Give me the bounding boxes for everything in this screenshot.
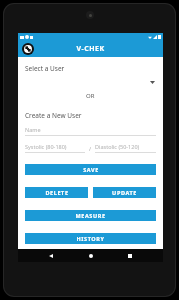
staticText: Diastolic (50-120): [95, 143, 140, 150]
button[interactable]: DELETE: [25, 187, 88, 198]
staticText: HISTORY: [76, 235, 105, 242]
staticText: Create a New User: [25, 111, 82, 120]
staticText: Systolic (80-180): [25, 143, 67, 150]
button[interactable]: Recent apps: [123, 249, 137, 262]
staticText: DELETE: [45, 189, 69, 196]
staticText: /: [89, 145, 92, 152]
staticText: V-CHEK: [76, 44, 105, 54]
button[interactable]: V-Chek logo: [22, 43, 34, 55]
button[interactable]: HISTORY: [25, 233, 156, 244]
button[interactable]: UPDATE: [93, 187, 156, 198]
button[interactable]: SAVE: [25, 164, 156, 175]
staticText: UPDATE: [112, 189, 137, 196]
button[interactable]: Select a user dropdown: [25, 73, 156, 92]
button[interactable]: MEASURE: [25, 210, 156, 221]
button[interactable]: Systolic (80-180): [25, 143, 85, 153]
staticText: OR: [86, 92, 95, 100]
staticText: Name: [25, 126, 41, 133]
button[interactable]: Home: [84, 249, 98, 262]
staticText: MEASURE: [75, 212, 106, 219]
button[interactable]: Back: [44, 249, 58, 262]
staticText: Select a User: [25, 64, 65, 73]
button[interactable]: Diastolic (50-120): [95, 143, 156, 153]
button[interactable]: Name: [25, 126, 156, 136]
staticText: SAVE: [83, 166, 99, 173]
